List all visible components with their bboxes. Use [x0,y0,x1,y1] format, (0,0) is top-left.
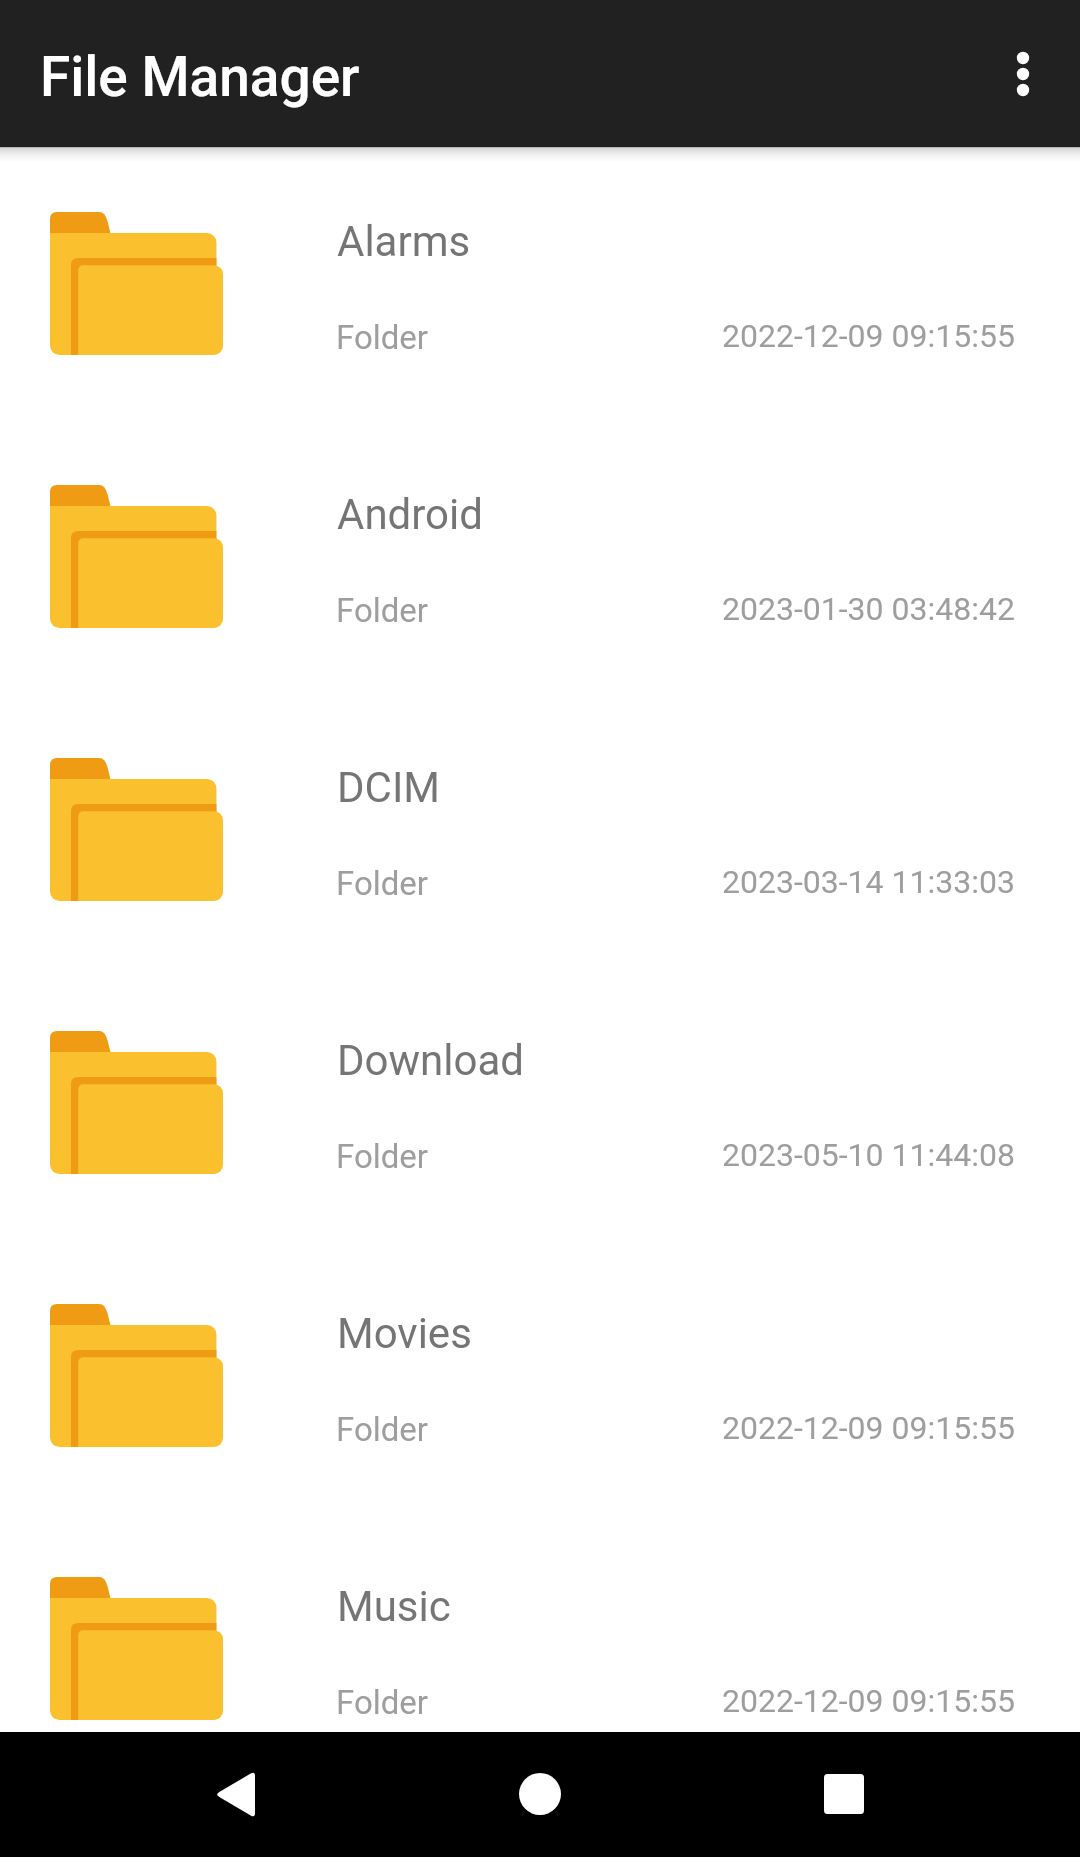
button[interactable]: Alarms [0,147,1080,420]
staticText: Folder [336,318,429,357]
staticText: Folder [336,1683,429,1722]
staticText: Folder [336,1137,429,1176]
button[interactable]: Movies [0,1239,1080,1512]
staticText: DCIM [337,763,440,812]
staticText: Folder [336,591,429,630]
staticText: Music [337,1582,451,1631]
button[interactable]: DCIM [0,693,1080,966]
button[interactable]: Android [0,420,1080,693]
button[interactable]: More options [962,13,1080,134]
staticText: 2022-12-09 09:15:55 [722,1682,1015,1720]
staticText: Folder [336,864,429,903]
staticText: Android [337,490,483,539]
staticText: Folder [336,1410,429,1449]
staticText: Download [337,1036,524,1085]
staticText: 2022-12-09 09:15:55 [722,317,1015,355]
button[interactable]: Home [480,1734,600,1854]
staticText: 2023-01-30 03:48:42 [722,590,1015,628]
staticText: 2023-05-10 11:44:08 [722,1136,1015,1174]
staticText: Movies [337,1309,472,1358]
button[interactable]: Back [175,1734,295,1854]
staticText: Alarms [337,217,471,266]
button[interactable]: Download [0,966,1080,1239]
staticText: 2023-03-14 11:33:03 [722,863,1015,901]
staticText: 2022-12-09 09:15:55 [722,1409,1015,1447]
button[interactable]: Music [0,1512,1080,1785]
staticText: File Manager [40,45,360,109]
button[interactable]: Recent apps [784,1734,904,1854]
